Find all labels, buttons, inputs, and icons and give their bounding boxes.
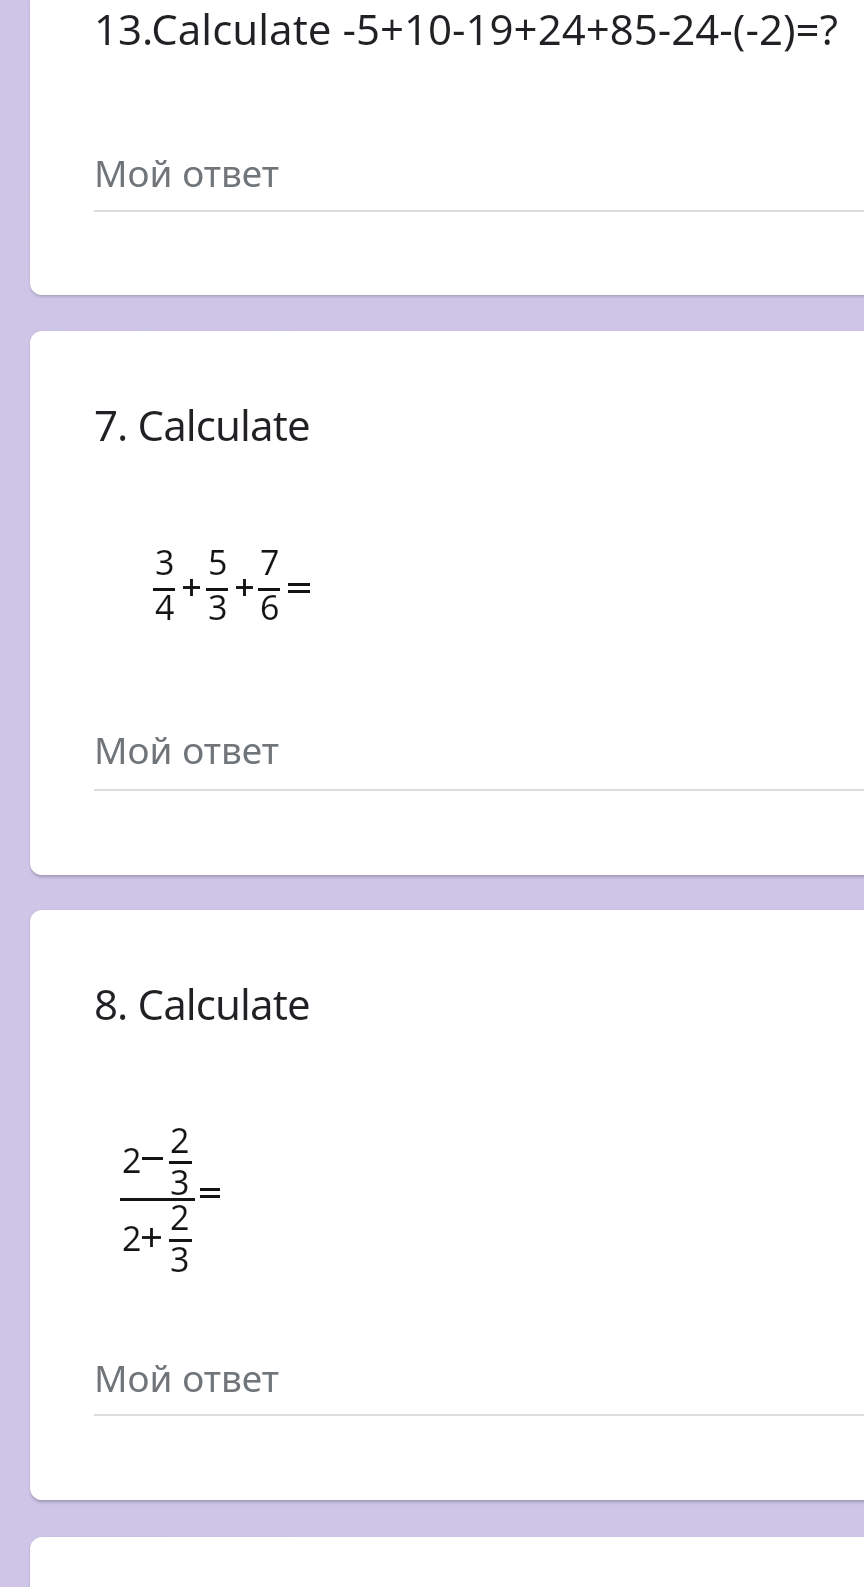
button[interactable]: Мой ответ	[94, 1352, 864, 1416]
button[interactable]: Question 8	[30, 910, 864, 1500]
button[interactable]: Question 7	[30, 331, 864, 875]
staticText: Мой ответ	[94, 1352, 280, 1402]
staticText: 8. Calculate	[94, 975, 310, 1032]
staticText: 2	[170, 1194, 190, 1240]
staticText: 13.Calculate -5+10-19+24+85-24-(-2)=?	[94, 0, 838, 57]
staticText: Мой ответ	[94, 724, 280, 774]
staticText: 4	[155, 584, 175, 630]
staticText: 3	[170, 1159, 190, 1205]
button[interactable]: Мой ответ	[94, 724, 864, 791]
staticText: 7. Calculate	[94, 396, 310, 453]
staticText: 6	[260, 584, 280, 630]
staticText: 7	[260, 539, 280, 585]
staticText: 2	[122, 1137, 142, 1183]
staticText: 3	[155, 539, 175, 585]
staticText: 2	[122, 1215, 142, 1261]
staticText: 5	[208, 539, 228, 585]
staticText: 3	[170, 1236, 190, 1282]
staticText: 3	[208, 584, 228, 630]
staticText: Мой ответ	[94, 147, 280, 197]
button[interactable]: Question 13	[30, 0, 864, 295]
staticText: 2	[170, 1117, 190, 1163]
button[interactable]: Мой ответ	[94, 147, 864, 212]
